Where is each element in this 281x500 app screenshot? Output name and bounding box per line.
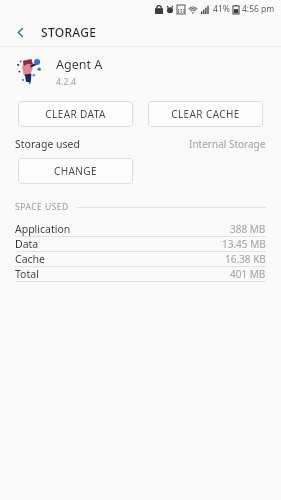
staticText: 13.45 MB	[222, 237, 266, 251]
staticText: 401 MB	[230, 267, 266, 281]
staticText: Agent A	[56, 56, 103, 73]
staticText: Internal Storage	[189, 137, 266, 151]
staticText: SPACE USED	[15, 201, 69, 213]
staticText: Total	[15, 267, 39, 281]
button[interactable]: CHANGE	[18, 158, 133, 184]
staticText: Application	[15, 222, 71, 236]
button[interactable]: CLEAR CACHE	[148, 101, 263, 127]
staticText: CLEAR DATA	[45, 107, 106, 121]
staticText: CHANGE	[54, 164, 97, 178]
staticText: 16.38 KB	[225, 252, 266, 266]
staticText: 4.2.4	[56, 75, 77, 87]
button[interactable]: Back	[8, 20, 32, 44]
staticText: 4:56 pm	[242, 3, 275, 15]
staticText: 41%	[213, 3, 230, 15]
staticText: CLEAR CACHE	[171, 107, 240, 121]
staticText: 388 MB	[230, 222, 266, 236]
staticText: Data	[15, 237, 39, 251]
button[interactable]: CLEAR DATA	[18, 101, 133, 127]
staticText: Cache	[15, 252, 45, 266]
staticText: STORAGE	[41, 24, 97, 40]
staticText: Storage used	[15, 137, 80, 151]
